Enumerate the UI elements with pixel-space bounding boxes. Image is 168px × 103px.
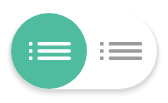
button[interactable]: Toggle list view — [0, 0, 168, 103]
